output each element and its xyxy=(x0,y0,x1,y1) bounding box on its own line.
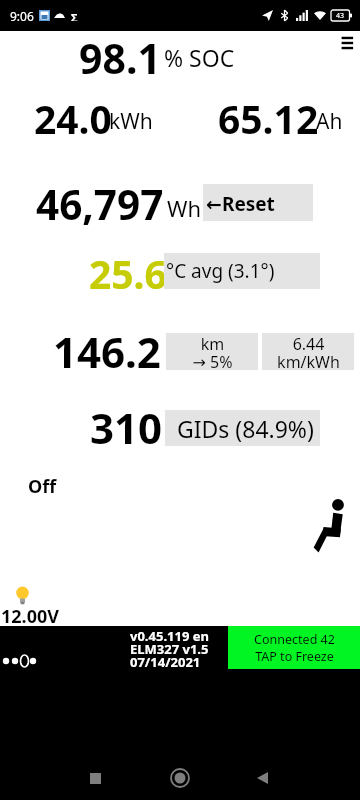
staticText: 9:06 xyxy=(10,8,34,24)
staticText: 310 xyxy=(90,399,163,456)
staticText: v0.45.119 en ELM327 v1.5 07/14/2021 xyxy=(130,627,209,671)
button[interactable]: °C avg (3.1°) xyxy=(164,253,320,289)
staticText: °C avg (3.1°) xyxy=(166,258,275,284)
button[interactable]: Connected 42 TAP to Freeze xyxy=(228,626,360,669)
staticText: Connected 42 TAP to Freeze xyxy=(254,631,335,664)
button[interactable]: Seat heater xyxy=(311,498,349,553)
staticText: kWh xyxy=(109,107,153,136)
button[interactable]: GIDs (84.9%) xyxy=(165,410,320,446)
staticText: 12.00V xyxy=(1,604,59,629)
staticText: GIDs (84.9%) xyxy=(177,413,314,444)
staticText: km → 5% xyxy=(192,333,233,370)
staticText: 98.1 xyxy=(79,30,161,86)
staticText: Ah xyxy=(316,107,343,136)
staticText: Σ xyxy=(71,10,78,21)
button[interactable]: Menu xyxy=(340,34,356,52)
button[interactable]: Off xyxy=(28,474,57,499)
staticText: ←Reset xyxy=(206,191,275,217)
staticText: 146.2 xyxy=(53,323,161,380)
staticText: 43 xyxy=(336,11,345,21)
staticText: 25.6 xyxy=(89,247,167,300)
staticText: 24.0 xyxy=(34,92,112,145)
staticText: % SOC xyxy=(164,42,235,73)
button[interactable]: km → 5% xyxy=(166,333,258,370)
staticText: 65.12 xyxy=(218,92,319,145)
staticText: Wh xyxy=(167,193,202,223)
staticText: 46,797 xyxy=(36,177,164,232)
button[interactable]: 6.44 km/kWh xyxy=(262,333,354,370)
staticText: 6.44 km/kWh xyxy=(277,333,340,370)
button[interactable]: ←Reset xyxy=(203,184,313,221)
button[interactable]: Recents xyxy=(75,758,115,798)
button[interactable]: Home xyxy=(160,758,200,798)
staticText: Off xyxy=(28,474,57,499)
button[interactable]: Back xyxy=(242,758,282,798)
